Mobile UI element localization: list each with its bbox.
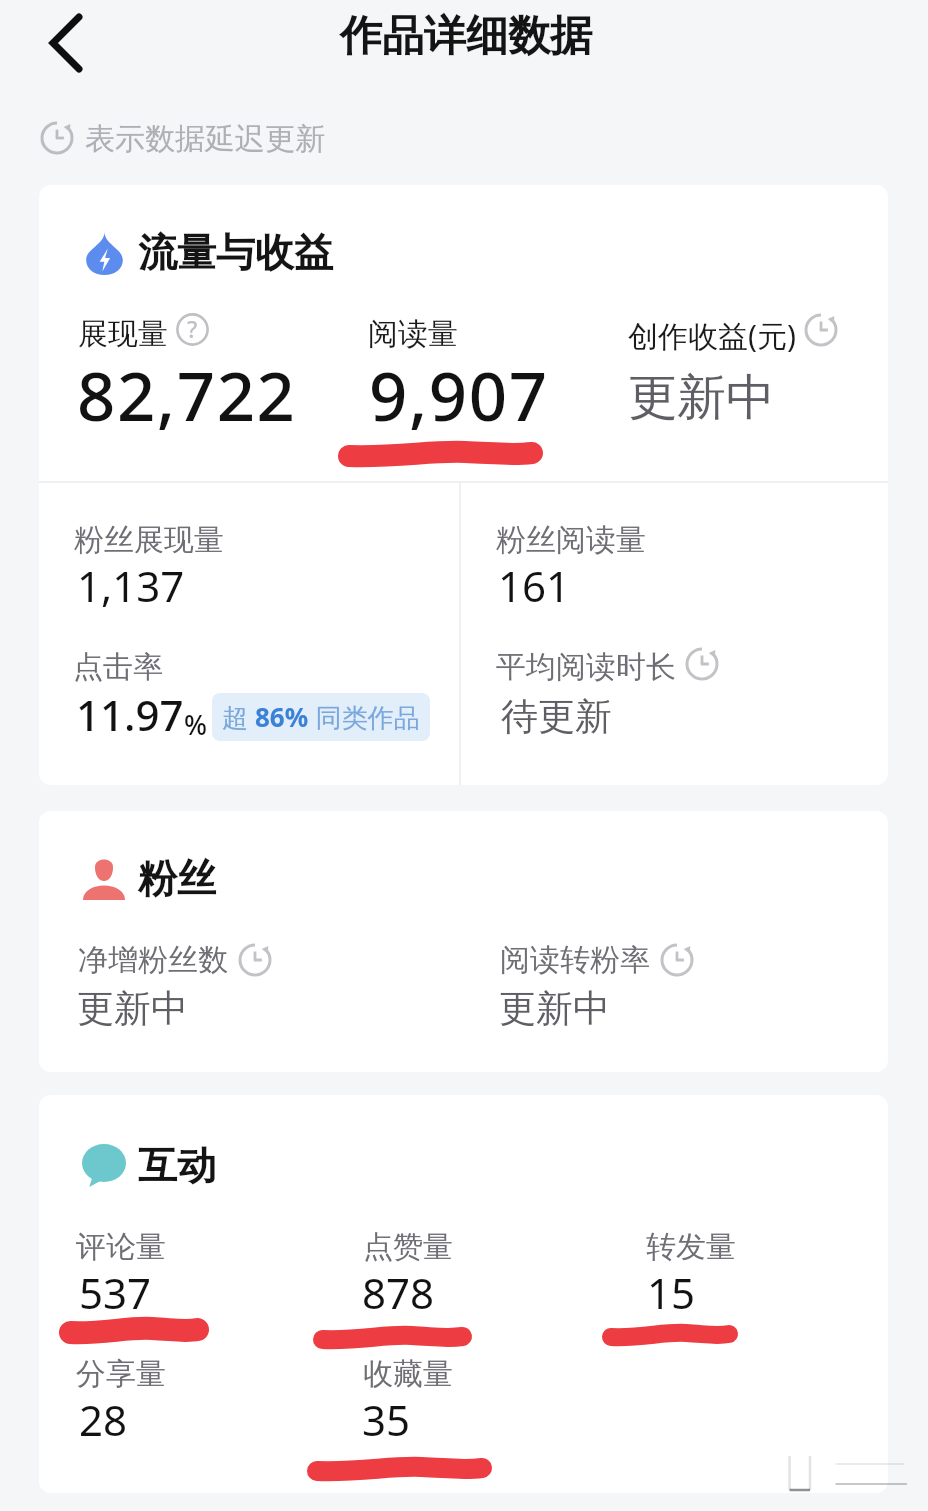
staticText: 86% <box>255 699 309 734</box>
staticText: 分享量 <box>76 1355 166 1393</box>
staticText: 粉丝阅读量 <box>496 521 646 559</box>
staticText: 更新中 <box>77 985 188 1032</box>
button[interactable]: 流量与收益 <box>39 185 888 785</box>
staticText: 15 <box>647 1264 696 1321</box>
staticText: 阅读量 <box>368 315 458 353</box>
staticText: 9,907 <box>369 349 549 440</box>
staticText: 537 <box>79 1264 152 1321</box>
staticText: 超 <box>222 699 255 735</box>
staticText: 878 <box>362 1264 435 1321</box>
staticText: 表示数据延迟更新 <box>85 120 325 158</box>
staticText: 收藏量 <box>363 1355 453 1393</box>
staticText: 转发量 <box>646 1228 736 1266</box>
staticText: 点击率 <box>73 648 163 686</box>
staticText: 流量与收益 <box>138 228 333 277</box>
button[interactable]: 粉丝 <box>39 811 888 1072</box>
staticText: ? <box>187 313 198 344</box>
staticText: 作品详细数据 <box>340 10 592 63</box>
staticText: 评论量 <box>76 1228 166 1266</box>
staticText: 11.97 <box>76 686 184 743</box>
staticText: 82,722 <box>77 349 297 440</box>
staticText: 粉丝展现量 <box>74 521 224 559</box>
staticText: 创作收益(元) <box>628 315 796 356</box>
staticText: 1,137 <box>77 557 185 614</box>
button[interactable]: Back <box>24 0 110 86</box>
staticText: 待更新 <box>501 693 612 740</box>
staticText: 28 <box>79 1391 128 1448</box>
staticText: 净增粉丝数 <box>78 941 228 979</box>
staticText: 平均阅读时长 <box>496 648 676 686</box>
staticText: 点赞量 <box>363 1228 453 1266</box>
staticText: 更新中 <box>499 985 610 1032</box>
staticText: 粉丝 <box>138 854 216 903</box>
staticText: 阅读转粉率 <box>500 941 650 979</box>
staticText: 161 <box>498 557 571 614</box>
button[interactable]: 展现量说明 <box>176 313 209 346</box>
staticText: 35 <box>362 1391 411 1448</box>
staticText: 更新中 <box>628 367 775 429</box>
staticText: 展现量 <box>78 315 168 353</box>
staticText: 同类作品 <box>309 699 420 735</box>
button[interactable]: 互动 <box>39 1095 888 1493</box>
staticText: % <box>184 706 208 743</box>
staticText: 互动 <box>138 1141 216 1190</box>
